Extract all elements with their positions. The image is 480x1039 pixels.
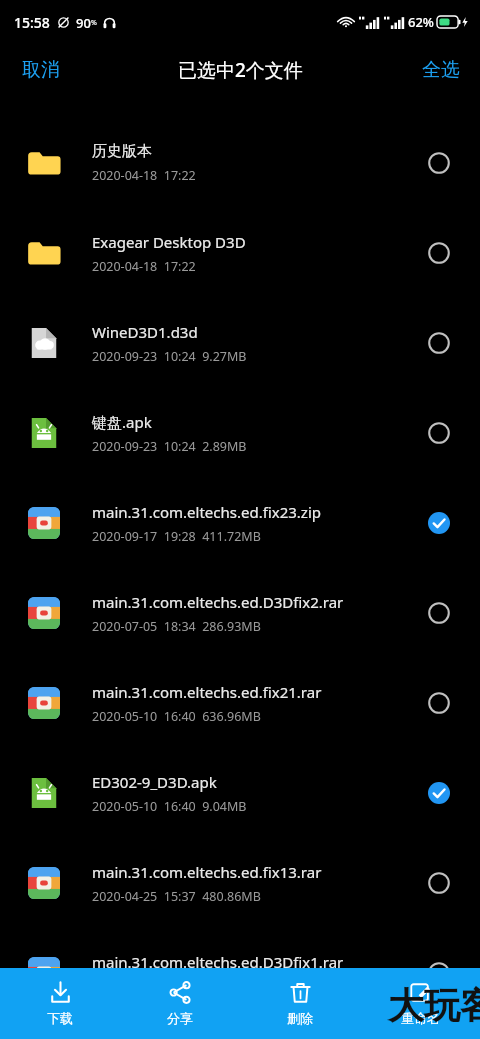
button[interactable]: 全选 [402, 50, 480, 90]
staticText: 2020-07-05 18:34 286.93MB [92, 618, 261, 635]
button[interactable]: Not selected [422, 686, 456, 720]
button[interactable]: 删除 [240, 973, 360, 1034]
staticText: 2020-05-10 16:40 9.04MB [92, 798, 247, 815]
staticText: 2020-04-18 17:22 [92, 167, 196, 184]
button[interactable]: Not selected [422, 236, 456, 270]
staticText: 历史版本 [92, 142, 152, 161]
button[interactable]: Selected [422, 506, 456, 540]
staticText: 下载 [47, 1010, 73, 1026]
button[interactable]: WineD3D1.d3d [0, 298, 480, 388]
staticText: main.31.com.eltechs.ed.fix13.rar [92, 862, 322, 882]
button[interactable]: 分享 [120, 973, 240, 1034]
staticText: main.31.com.eltechs.ed.D3Dfix1.rar [92, 952, 344, 972]
staticText: WineD3D1.d3d [92, 322, 198, 342]
button[interactable]: ED302-9_D3D.apk [0, 748, 480, 838]
button[interactable]: Not selected [422, 596, 456, 630]
staticText: 2020-04-25 15:37 480.86MB [92, 888, 261, 905]
staticText: % [91, 18, 97, 28]
button[interactable]: main.31.com.eltechs.ed.fix13.rar [0, 838, 480, 928]
button[interactable]: main.31.com.eltechs.ed.fix21.rar [0, 658, 480, 748]
button[interactable]: 取消 [0, 50, 82, 90]
staticText: 2020-04-20 11:02 300.12MB [92, 978, 261, 995]
button[interactable]: 重命名 [360, 973, 480, 1034]
button[interactable]: 键盘.apk [0, 388, 480, 478]
staticText: 取消 [22, 58, 60, 82]
staticText: 已选中2个文件 [178, 57, 303, 83]
staticText: 分享 [167, 1010, 193, 1026]
button[interactable]: 历史版本 [0, 118, 480, 208]
staticText: 删除 [287, 1010, 313, 1026]
staticText: 2020-04-18 17:22 [92, 258, 196, 275]
button[interactable]: Not selected [422, 956, 456, 990]
staticText: 重命名 [401, 1010, 440, 1026]
staticText: 62% [408, 13, 434, 31]
button[interactable]: Selected [422, 776, 456, 810]
staticText: 键盘.apk [92, 412, 152, 432]
button[interactable]: main.31.com.eltechs.ed.D3Dfix1.rar [0, 928, 480, 1018]
staticText: 全选 [422, 58, 460, 82]
staticText: main.31.com.eltechs.ed.fix23.zip [92, 502, 321, 522]
staticText: main.31.com.eltechs.ed.fix21.rar [92, 682, 322, 702]
button[interactable]: Not selected [422, 416, 456, 450]
staticText: 15:58 [14, 13, 50, 32]
button[interactable]: main.31.com.eltechs.ed.fix23.zip [0, 478, 480, 568]
staticText: 2020-05-10 16:40 636.96MB [92, 708, 261, 725]
button[interactable]: Not selected [422, 146, 456, 180]
staticText: main.31.com.eltechs.ed.D3Dfix2.rar [92, 592, 344, 612]
button[interactable]: Not selected [422, 326, 456, 360]
staticText: 2020-09-17 19:28 411.72MB [92, 528, 261, 545]
staticText: 2020-09-23 10:24 2.89MB [92, 438, 247, 455]
staticText: 2020-09-23 10:24 9.27MB [92, 348, 247, 365]
staticText: 大玩客 [388, 983, 480, 1028]
staticText: ED302-9_D3D.apk [92, 772, 217, 792]
button[interactable]: Not selected [422, 866, 456, 900]
staticText: Exagear Desktop D3D [92, 232, 246, 252]
button[interactable]: Exagear Desktop D3D [0, 208, 480, 298]
staticText: 90 [76, 14, 91, 32]
button[interactable]: 下载 [0, 973, 120, 1034]
button[interactable]: main.31.com.eltechs.ed.D3Dfix2.rar [0, 568, 480, 658]
